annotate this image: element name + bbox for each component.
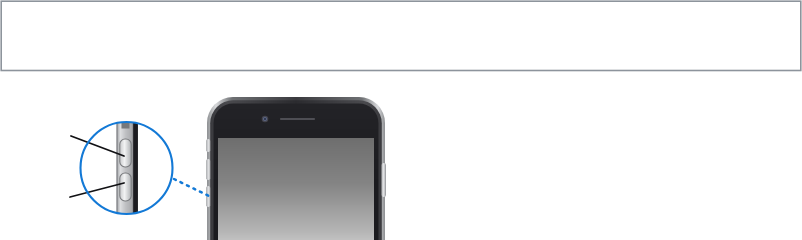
button[interactable]: Note box (1, 1, 801, 71)
button[interactable]: Volume buttons detail (81, 122, 173, 214)
button[interactable]: Phone illustration (205, 94, 387, 240)
